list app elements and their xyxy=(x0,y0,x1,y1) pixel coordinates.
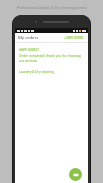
staticText: My orders xyxy=(18,35,39,41)
staticText: Laundry & Dry cleaning xyxy=(19,70,55,74)
staticText: + NEW ORDER xyxy=(64,36,84,40)
staticText: #APP-000821 xyxy=(19,48,39,52)
button[interactable]: + NEW ORDER xyxy=(63,35,85,41)
staticText: Order completed, thank you for choosing … xyxy=(19,54,84,63)
button[interactable]: #APP-000821 xyxy=(15,46,88,65)
button[interactable]: New order xyxy=(69,168,82,181)
staticText: Professional Laundry & Dry cleaning serv… xyxy=(17,5,87,10)
button[interactable]: Laundry & Dry cleaning xyxy=(15,69,88,75)
